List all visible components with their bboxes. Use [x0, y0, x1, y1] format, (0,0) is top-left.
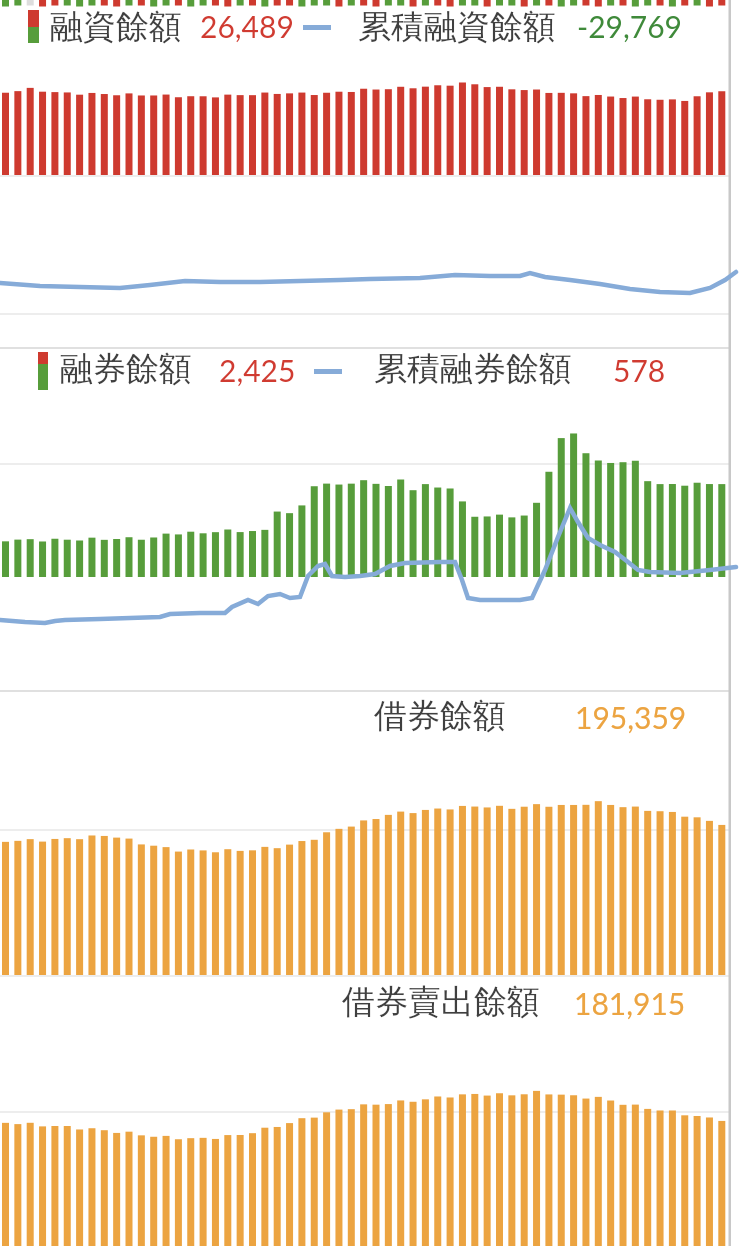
staticText: 融券餘額 [60, 348, 192, 390]
staticText: -29,769 [577, 8, 682, 44]
staticText: 借券賣出餘額 [342, 981, 540, 1023]
button[interactable] [0, 6, 739, 50]
staticText: 借券餘額 [374, 695, 506, 737]
button[interactable] [0, 350, 739, 394]
staticText: 195,359 [575, 699, 687, 735]
staticText: 累積融資餘額 [358, 6, 556, 48]
button[interactable] [320, 976, 700, 1022]
staticText: 2,425 [219, 352, 296, 388]
staticText: 181,915 [574, 985, 686, 1021]
staticText: 累積融券餘額 [374, 348, 572, 390]
button[interactable] [340, 694, 700, 740]
staticText: 578 [613, 352, 666, 388]
staticText: 26,489 [200, 8, 294, 44]
staticText: 融資餘額 [50, 6, 182, 48]
